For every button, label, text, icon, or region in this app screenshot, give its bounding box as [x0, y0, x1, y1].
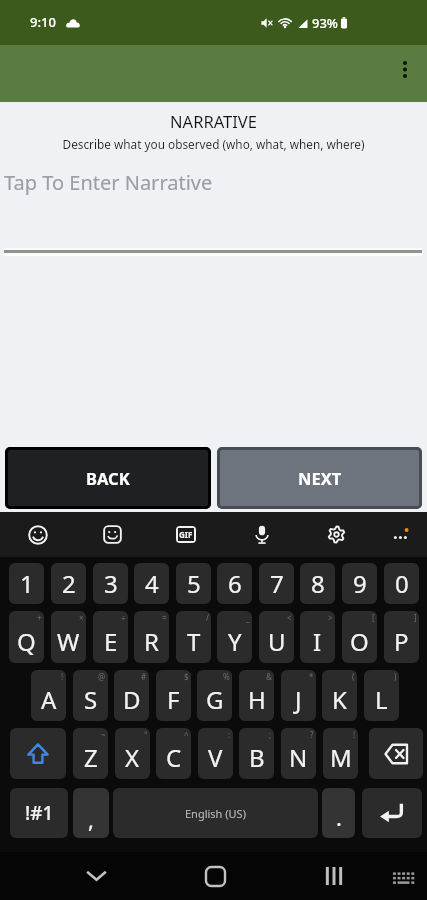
button[interactable]: V	[198, 728, 233, 779]
button[interactable]: R	[134, 611, 169, 663]
staticText: X	[125, 741, 140, 774]
button[interactable]: Settings	[314, 512, 358, 557]
button[interactable]: F	[156, 670, 191, 721]
button[interactable]: Backspace	[369, 728, 423, 779]
button[interactable]: .	[322, 788, 355, 838]
staticText: 6	[228, 567, 242, 600]
button[interactable]: Q	[9, 611, 44, 663]
staticText: P	[394, 625, 409, 658]
staticText: 3	[104, 567, 118, 600]
staticText: D	[123, 683, 141, 716]
button[interactable]: Z	[73, 728, 108, 779]
button[interactable]: Home	[191, 852, 239, 900]
button[interactable]: 4	[134, 563, 169, 604]
button[interactable]: K	[322, 670, 357, 721]
staticText: !	[353, 729, 356, 740]
button[interactable]: GIF	[164, 512, 208, 557]
button[interactable]: D	[114, 670, 149, 721]
button[interactable]: !#1	[10, 788, 68, 838]
button[interactable]: 8	[300, 563, 335, 604]
staticText: *	[309, 671, 314, 682]
staticText: S	[84, 683, 98, 716]
button[interactable]: H	[239, 670, 274, 721]
staticText: I	[313, 625, 322, 658]
staticText: BACK	[86, 467, 130, 489]
button[interactable]: W	[51, 611, 86, 663]
button[interactable]: 1	[9, 563, 44, 604]
button[interactable]: T	[176, 611, 211, 663]
button[interactable]: O	[342, 611, 377, 663]
button[interactable]: More options	[381, 45, 427, 93]
staticText: &	[266, 671, 272, 682]
button[interactable]: Recent apps	[310, 852, 358, 900]
staticText: Y	[228, 625, 242, 658]
staticText: :	[228, 729, 231, 740]
staticText: ÷	[121, 612, 126, 623]
button[interactable]: 3	[93, 563, 128, 604]
button[interactable]: 7	[259, 563, 294, 604]
staticText: 93%	[312, 14, 338, 32]
button[interactable]: S	[73, 670, 108, 721]
button[interactable]: Enter	[362, 788, 422, 838]
button[interactable]: M	[323, 728, 358, 779]
staticText: =	[162, 612, 167, 623]
staticText: A	[41, 683, 57, 716]
staticText: /	[206, 612, 209, 623]
button[interactable]: E	[93, 611, 128, 663]
staticText: )	[394, 671, 397, 682]
button[interactable]: 9	[342, 563, 377, 604]
staticText: N	[289, 741, 308, 774]
staticText: !	[61, 671, 64, 682]
button[interactable]: Emoji	[16, 512, 60, 557]
button[interactable]: 2	[51, 563, 86, 604]
button[interactable]: B	[239, 728, 274, 779]
button[interactable]: G	[197, 670, 232, 721]
button[interactable]: J	[281, 670, 316, 721]
staticText: %	[223, 671, 230, 682]
staticText: Z	[84, 741, 98, 774]
button[interactable]: P	[384, 611, 419, 663]
staticText: 9:10	[30, 13, 56, 31]
button[interactable]: Back	[72, 852, 120, 900]
button[interactable]: Y	[217, 611, 252, 663]
staticText: 7	[270, 567, 284, 600]
staticText: M	[330, 741, 352, 774]
button[interactable]: I	[300, 611, 335, 663]
button[interactable]: X	[115, 728, 150, 779]
staticText: ,	[88, 804, 94, 834]
button[interactable]: A	[31, 670, 66, 721]
staticText: °	[144, 729, 148, 740]
button[interactable]: U	[259, 611, 294, 663]
staticText: G	[206, 683, 224, 716]
staticText: ×	[79, 612, 84, 623]
staticText: #	[141, 671, 147, 682]
staticText: ]	[414, 612, 417, 623]
staticText: V	[208, 741, 223, 774]
button[interactable]: More options	[379, 512, 423, 557]
staticText: ^	[184, 729, 189, 740]
button[interactable]: L	[364, 670, 399, 721]
button[interactable]: ,	[73, 788, 109, 838]
button[interactable]: Voice input	[240, 512, 284, 557]
staticText: +	[37, 612, 42, 623]
button[interactable]: Stickers	[90, 512, 134, 557]
staticText: _	[246, 612, 250, 623]
button[interactable]: BACK	[5, 447, 211, 509]
button[interactable]: English (US)	[113, 788, 318, 838]
button[interactable]: 0	[384, 563, 419, 604]
button[interactable]: Hide keyboard	[379, 854, 427, 900]
staticText: English (US)	[185, 806, 246, 821]
staticText: H	[248, 683, 266, 716]
staticText: W	[57, 625, 80, 658]
staticText: GIF	[179, 529, 193, 540]
button[interactable]: N	[281, 728, 316, 779]
staticText: [	[372, 612, 375, 623]
button[interactable]: NEXT	[217, 447, 422, 509]
button[interactable]: 5	[176, 563, 211, 604]
button[interactable]: C	[156, 728, 191, 779]
button[interactable]: Shift	[10, 728, 66, 779]
staticText: E	[104, 625, 118, 658]
staticText: !#1	[25, 800, 54, 826]
button[interactable]: 6	[217, 563, 252, 604]
staticText: <	[287, 612, 292, 623]
